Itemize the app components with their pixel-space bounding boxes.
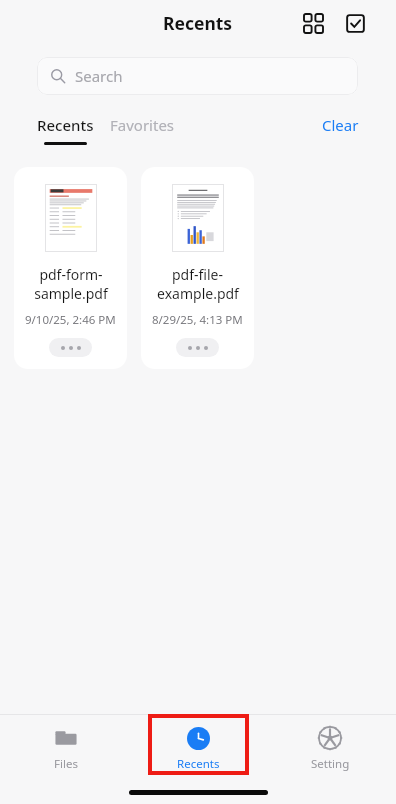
staticText: Clear <box>322 115 359 135</box>
staticText: Setting <box>311 756 350 772</box>
button[interactable]: Select <box>340 8 370 38</box>
staticText: Search <box>75 66 123 86</box>
button[interactable]: pdf-form- <box>14 167 127 369</box>
button[interactable]: Files <box>0 725 132 772</box>
staticText: pdf-file- <box>172 265 223 284</box>
button[interactable]: Search <box>37 57 358 95</box>
staticText: sample.pdf <box>34 284 108 303</box>
staticText: 8/29/25, 4:13 PM <box>152 312 243 328</box>
button[interactable]: Grid view <box>298 8 328 38</box>
button[interactable]: pdf-file- <box>141 167 254 369</box>
button[interactable]: More options <box>176 338 219 357</box>
staticText: pdf-form- <box>39 265 103 284</box>
button[interactable]: More options <box>49 338 92 357</box>
staticText: example.pdf <box>157 284 239 303</box>
staticText: Recents <box>163 11 233 35</box>
button[interactable]: Recents <box>132 725 264 772</box>
staticText: Recents <box>177 756 220 772</box>
staticText: Files <box>54 756 78 772</box>
staticText: Favorites <box>110 115 175 135</box>
staticText: Recents <box>37 115 94 135</box>
button[interactable]: Recents <box>37 115 94 145</box>
staticText: 9/10/25, 2:46 PM <box>25 312 116 328</box>
button[interactable]: Favorites <box>110 115 175 135</box>
button[interactable]: Clear <box>322 115 359 135</box>
button[interactable]: Setting <box>264 725 396 772</box>
